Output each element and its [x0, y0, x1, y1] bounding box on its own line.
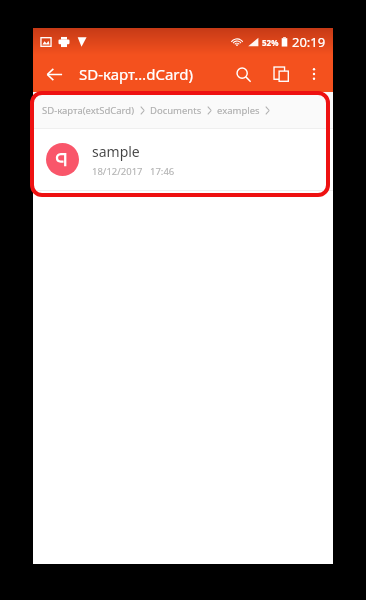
button[interactable]: Search [227, 58, 259, 90]
button[interactable]: More options [299, 59, 329, 89]
staticText: examples [217, 104, 260, 117]
staticText: 52% [262, 37, 279, 48]
staticText: Documents [150, 104, 202, 117]
button[interactable]: SD-карта(extSdCard) [33, 92, 333, 128]
staticText: 17:46 [150, 165, 175, 178]
staticText: 18/12/2017 [92, 165, 143, 178]
staticText: sample [92, 142, 140, 161]
button[interactable]: Back [37, 57, 71, 91]
button[interactable]: Multi window [265, 58, 297, 90]
button[interactable]: sample [33, 129, 333, 190]
staticText: 20:19 [292, 33, 326, 51]
staticText: SD-карта(extSdCard) [42, 104, 135, 117]
staticText: SD-карт…dCard) [79, 64, 193, 84]
